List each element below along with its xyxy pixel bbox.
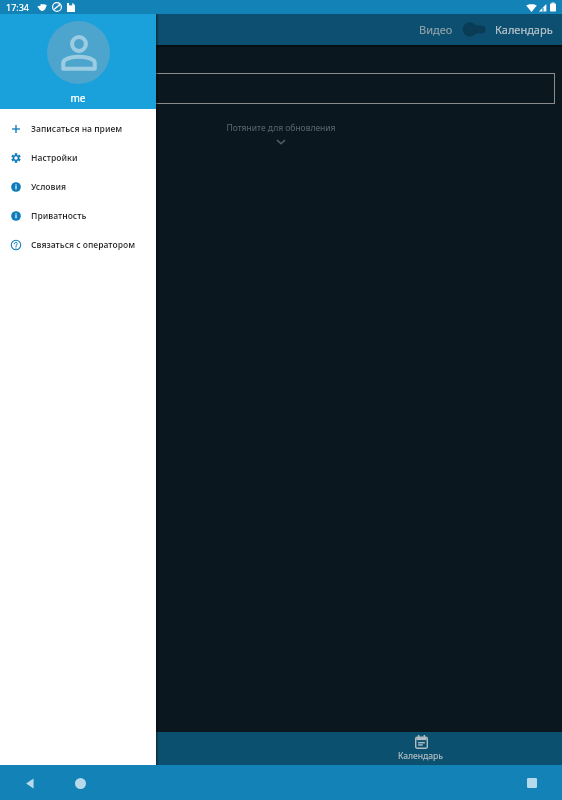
button[interactable]: Recents [523, 774, 541, 792]
staticText: Приватность [31, 210, 87, 222]
button[interactable]: Условия [0, 172, 156, 201]
button[interactable]: Записаться на прием [0, 114, 156, 143]
staticText: Записаться на прием [31, 123, 123, 135]
button[interactable]: Back [21, 774, 39, 792]
button[interactable]: Календарь [281, 732, 562, 765]
staticText: Связаться с оператором [31, 239, 136, 251]
button[interactable]: Видео [0, 732, 281, 765]
staticText: Календарь [398, 750, 444, 762]
staticText: Условия [31, 181, 67, 193]
staticText: Потяните для обновления [0, 122, 562, 134]
button[interactable]: Приватность [0, 201, 156, 230]
button[interactable]: Связаться с оператором [0, 230, 156, 259]
button[interactable]: Настройки [0, 143, 156, 172]
staticText: 17:34 [6, 1, 30, 13]
button[interactable]: Home [71, 774, 89, 792]
staticText: Настройки [31, 152, 78, 164]
staticText: me [0, 91, 156, 105]
staticText: Календарь [495, 22, 553, 37]
staticText: Видео [419, 22, 453, 37]
button[interactable] [463, 22, 486, 37]
